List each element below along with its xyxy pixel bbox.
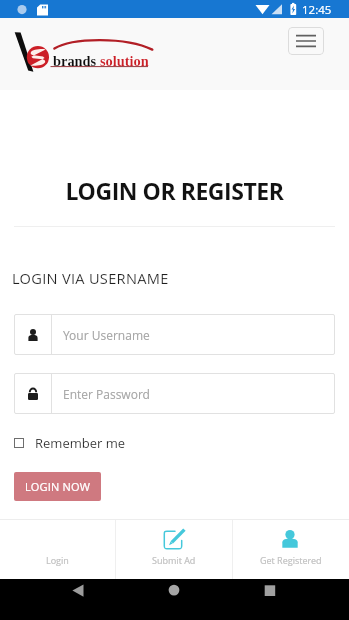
- button[interactable]: Remember me: [14, 434, 126, 452]
- button[interactable]: Open navigation menu: [288, 27, 324, 55]
- button[interactable]: LOGIN NOW: [14, 472, 101, 501]
- button[interactable]: Recent apps: [250, 579, 290, 620]
- staticText: Submit Ad: [152, 554, 196, 566]
- staticText: Login: [46, 554, 69, 566]
- staticText: 12:45: [302, 2, 332, 18]
- staticText: Your Username: [63, 327, 150, 343]
- staticText: LOGIN VIA USERNAME: [12, 268, 169, 288]
- staticText: solution: [100, 53, 149, 69]
- button[interactable]: Your Username: [14, 314, 335, 355]
- button[interactable]: Enter Password: [14, 373, 335, 414]
- button[interactable]: Submit Ad: [116, 520, 232, 580]
- button[interactable]: Home: [154, 579, 194, 620]
- staticText: Get Registered: [260, 554, 322, 566]
- staticText: Remember me: [35, 434, 126, 452]
- button[interactable]: Login: [0, 520, 115, 580]
- staticText: LOGIN NOW: [25, 479, 91, 494]
- staticText: LOGIN OR REGISTER: [0, 175, 349, 206]
- button[interactable]: Back: [58, 579, 98, 620]
- staticText: brands: [53, 53, 97, 69]
- staticText: Enter Password: [63, 386, 150, 402]
- button[interactable]: Get Registered: [233, 520, 349, 580]
